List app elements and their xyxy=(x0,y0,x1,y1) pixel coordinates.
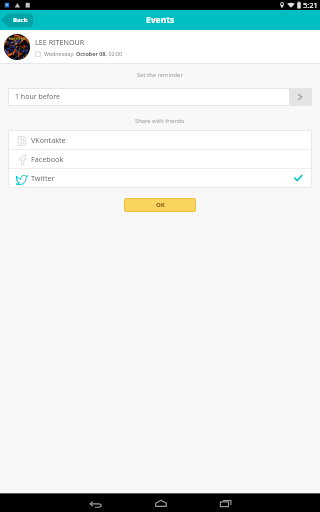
staticText: OK xyxy=(156,201,165,209)
staticText: Facebook xyxy=(31,154,303,164)
staticText: LEE RITENOUR xyxy=(35,37,85,47)
button[interactable]: Twitter xyxy=(9,169,311,187)
button[interactable]: 1 hour before xyxy=(9,89,311,105)
button[interactable]: Back xyxy=(63,494,128,512)
staticText: 02:00 xyxy=(107,50,123,57)
staticText: Set the reminder xyxy=(137,71,183,79)
button[interactable]: Recent apps xyxy=(193,494,258,512)
staticText: Events xyxy=(146,14,175,26)
button[interactable]: VKontakte xyxy=(9,131,311,149)
staticText: October 08, xyxy=(76,50,107,57)
staticText: VKontakte xyxy=(31,135,303,145)
button[interactable]: Back xyxy=(1,13,33,27)
staticText: Share with friends xyxy=(135,117,185,125)
staticText: 5:21 xyxy=(303,0,318,10)
staticText: Back xyxy=(13,16,28,24)
staticText: 1 hour before xyxy=(15,92,289,102)
staticText: Wednesday, xyxy=(44,50,76,57)
button[interactable]: LEE RITENOUR xyxy=(0,30,320,63)
button[interactable]: Facebook xyxy=(9,150,311,168)
button[interactable]: Home xyxy=(128,494,193,512)
button[interactable]: OK xyxy=(125,199,195,211)
staticText: Twitter xyxy=(31,173,293,183)
